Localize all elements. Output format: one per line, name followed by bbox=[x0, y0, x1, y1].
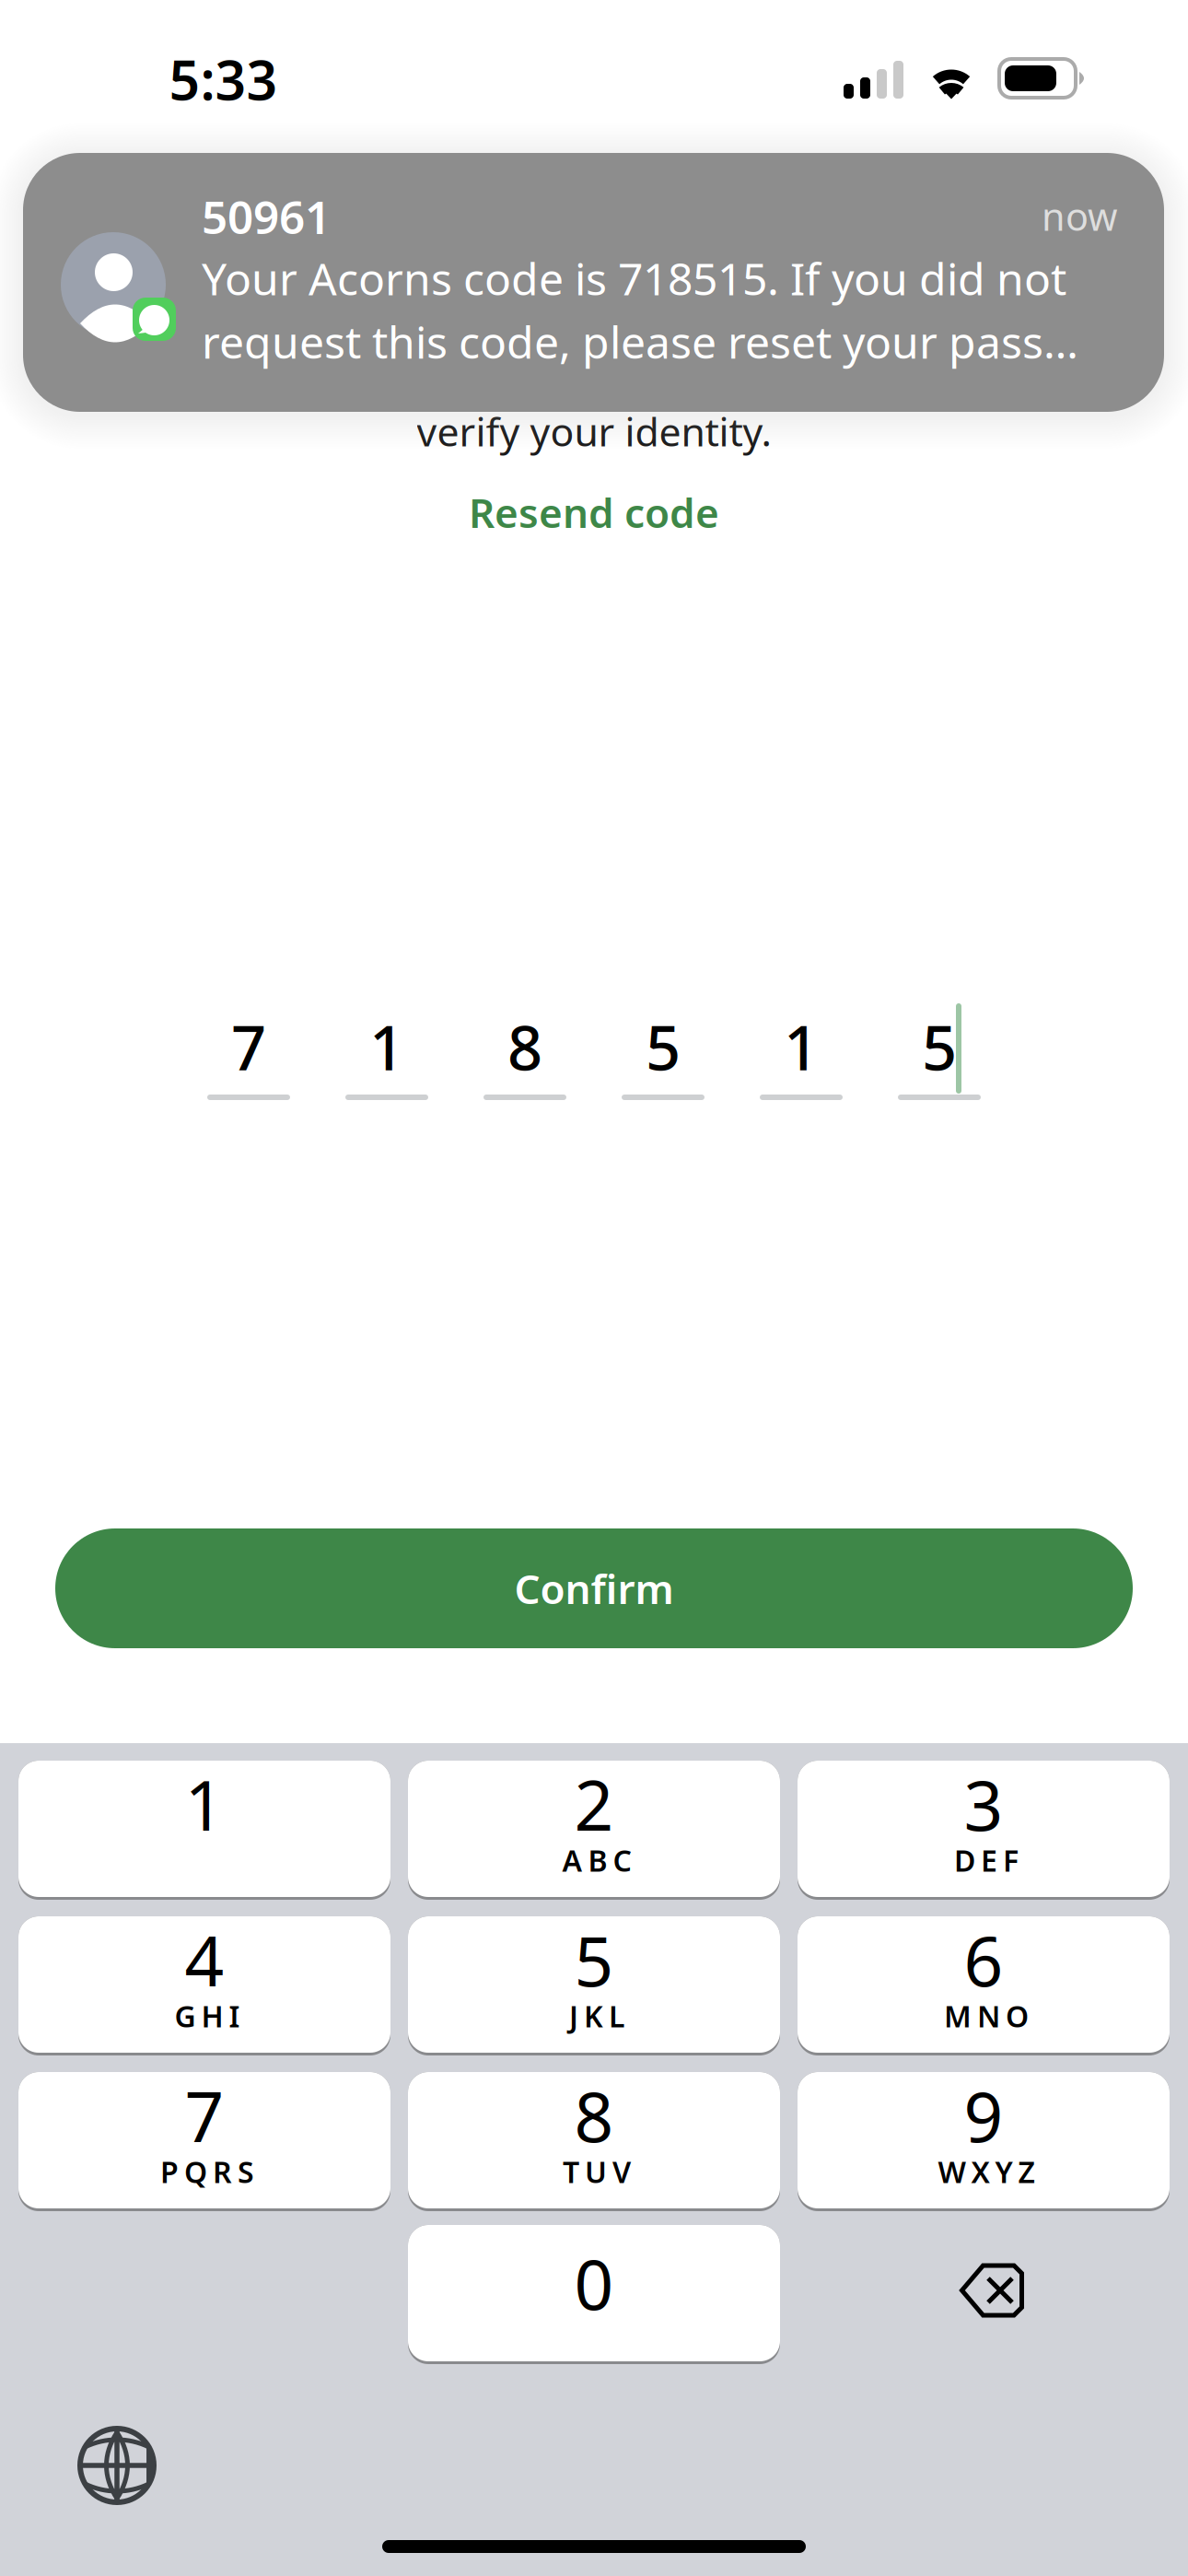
staticText: 0 bbox=[574, 2237, 614, 2329]
button[interactable]: 4 bbox=[18, 1916, 390, 2053]
staticText: TUV bbox=[563, 2152, 631, 2191]
staticText: 6 bbox=[964, 1914, 1003, 2005]
staticText: PQRS bbox=[160, 2152, 254, 2191]
button[interactable]: 8 bbox=[408, 2072, 780, 2208]
staticText: 7 bbox=[185, 2070, 224, 2161]
staticText: ABC bbox=[562, 1841, 631, 1880]
staticText: WXYZ bbox=[938, 2152, 1035, 2191]
staticText: 1 bbox=[185, 1758, 224, 1850]
button[interactable]: Resend code bbox=[230, 486, 958, 538]
staticText: verify your identity. bbox=[417, 405, 771, 457]
staticText: DEF bbox=[954, 1841, 1019, 1880]
button[interactable]: 1 bbox=[18, 1761, 390, 1897]
staticText: 5 bbox=[574, 1914, 614, 2005]
staticText: JKL bbox=[569, 1996, 624, 2035]
staticText: 50961 bbox=[202, 186, 331, 246]
staticText: 3 bbox=[964, 1758, 1003, 1850]
staticText: Confirm bbox=[514, 1561, 674, 1615]
button[interactable]: 3 bbox=[798, 1761, 1170, 1897]
button[interactable]: Verification code 718515 bbox=[207, 1023, 981, 1100]
staticText: 8 bbox=[507, 1006, 542, 1087]
staticText: 1 bbox=[784, 1006, 819, 1087]
button[interactable]: 7 bbox=[18, 2072, 390, 2208]
button[interactable]: 9 bbox=[798, 2072, 1170, 2208]
staticText: 5 bbox=[922, 1006, 957, 1087]
button[interactable]: 50961 bbox=[23, 153, 1164, 412]
button[interactable]: Delete bbox=[806, 2222, 1178, 2359]
staticText: now bbox=[1042, 191, 1117, 241]
button[interactable]: Next keyboard bbox=[55, 2419, 179, 2512]
button[interactable]: 0 bbox=[408, 2225, 780, 2361]
staticText: 9 bbox=[964, 2070, 1003, 2161]
staticText: 4 bbox=[185, 1914, 224, 2005]
staticText: 8 bbox=[574, 2070, 614, 2161]
staticText: 1 bbox=[369, 1006, 404, 1087]
button[interactable]: 2 bbox=[408, 1761, 780, 1897]
button[interactable]: Confirm bbox=[55, 1528, 1133, 1648]
button[interactable]: 5 bbox=[408, 1916, 780, 2053]
button[interactable]: 6 bbox=[798, 1916, 1170, 2053]
staticText: Resend code bbox=[469, 485, 719, 539]
staticText: 2 bbox=[574, 1758, 614, 1850]
staticText: GHI bbox=[175, 1996, 240, 2035]
staticText: MNO bbox=[944, 1996, 1029, 2035]
staticText: Your Acorns code is 718515. If you did n… bbox=[202, 249, 1078, 371]
staticText: 7 bbox=[231, 1006, 266, 1087]
staticText: 5:33 bbox=[169, 43, 278, 115]
staticText: 5 bbox=[646, 1006, 681, 1087]
